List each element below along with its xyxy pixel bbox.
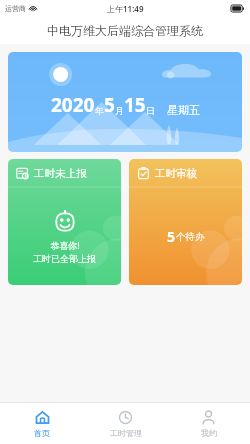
staticText: 工时审核 bbox=[155, 167, 197, 180]
staticText: 5 bbox=[167, 227, 176, 246]
button[interactable]: 工时未上报 bbox=[8, 159, 121, 285]
button[interactable]: 2020 bbox=[8, 52, 242, 152]
staticText: 15 bbox=[124, 92, 146, 118]
staticText: 工时未上报 bbox=[34, 167, 87, 180]
staticText: 运营商 bbox=[5, 4, 26, 13]
staticText: 上午11:49 bbox=[107, 3, 144, 14]
button[interactable]: 工时管理 bbox=[84, 403, 167, 444]
staticText: 中电万维大后端综合管理系统 bbox=[47, 23, 203, 38]
button[interactable]: 我约 bbox=[167, 403, 250, 444]
staticText: 5 bbox=[104, 92, 115, 118]
staticText: 恭喜你! bbox=[50, 239, 80, 251]
staticText: 月 bbox=[115, 105, 124, 116]
staticText: 年 bbox=[95, 105, 104, 116]
staticText: 2020 bbox=[51, 92, 95, 118]
staticText: 日 bbox=[146, 105, 155, 116]
staticText: 我约 bbox=[201, 428, 217, 438]
staticText: 工时管理 bbox=[110, 428, 142, 438]
staticText: 首页 bbox=[34, 428, 50, 438]
button[interactable]: 首页 bbox=[0, 403, 84, 444]
staticText: 工时已全部上报 bbox=[33, 253, 96, 264]
staticText: 星期五 bbox=[167, 103, 200, 117]
staticText: 个待办 bbox=[176, 231, 205, 243]
button[interactable]: 工时审核 bbox=[129, 159, 242, 285]
